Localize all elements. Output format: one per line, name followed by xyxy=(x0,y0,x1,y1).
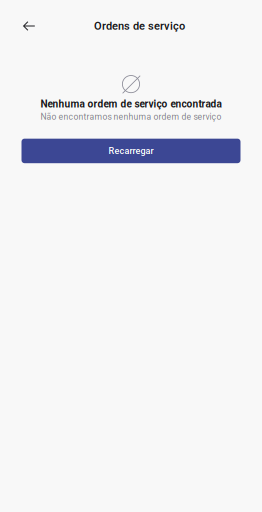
staticText: Não encontramos nenhuma ordem de serviço xyxy=(40,112,221,122)
button[interactable]: Back xyxy=(13,12,45,40)
staticText: Nenhuma ordem de serviço encontrada xyxy=(40,98,221,110)
staticText: Recarregar xyxy=(108,146,153,156)
button[interactable]: Recarregar xyxy=(21,139,240,163)
staticText: Ordens de serviço xyxy=(94,20,185,32)
